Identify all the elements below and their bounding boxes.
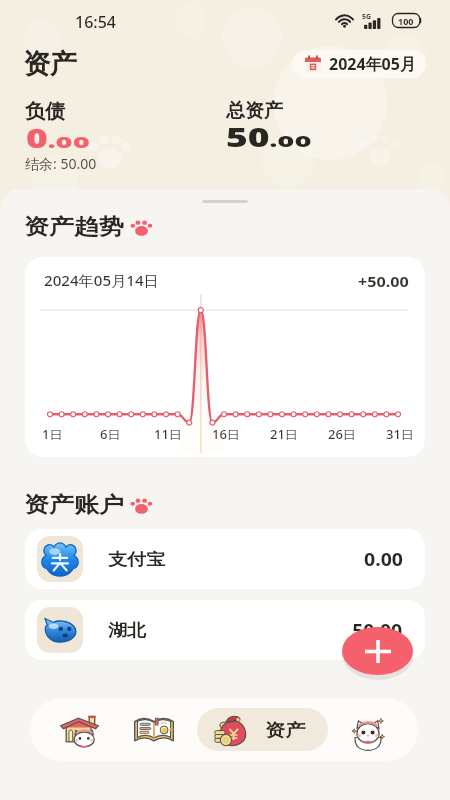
staticText: 2024年05月 xyxy=(329,53,416,75)
staticText: 11日 xyxy=(154,426,182,443)
staticText: .oo xyxy=(269,126,312,153)
staticText: 16:54 xyxy=(75,11,116,33)
button[interactable]: 资产 xyxy=(197,708,328,751)
button[interactable]: 我的 xyxy=(345,707,391,752)
staticText: 资产 xyxy=(265,719,305,741)
staticText: 50 xyxy=(226,118,269,154)
staticText: 100 xyxy=(398,15,414,27)
staticText: 结余: 50.00 xyxy=(25,154,97,173)
staticText: 2024年05月14日 xyxy=(44,271,159,290)
staticText: 负债 xyxy=(25,99,65,124)
staticText: 21日 xyxy=(270,426,298,443)
staticText: 总资产 xyxy=(226,99,283,123)
staticText: 50.00 xyxy=(352,619,403,642)
staticText: 资产账户 xyxy=(24,491,124,518)
staticText: 资产 xyxy=(23,47,77,81)
staticText: 湖北 xyxy=(108,620,146,641)
staticText: 资产趋势 xyxy=(24,213,124,240)
staticText: 支付宝 xyxy=(108,549,165,570)
staticText: 5G xyxy=(362,12,372,22)
staticText: 0.00 xyxy=(364,548,403,571)
button[interactable]: 添加 xyxy=(341,626,415,678)
button[interactable]: 首页 xyxy=(57,707,103,752)
staticText: 1日 xyxy=(42,426,63,443)
staticText: 16日 xyxy=(212,426,240,443)
staticText: 0 xyxy=(26,119,48,155)
staticText: .oo xyxy=(48,127,90,154)
button[interactable]: 支付宝 xyxy=(25,529,425,589)
staticText: +50.00 xyxy=(358,272,410,291)
staticText: 6日 xyxy=(100,426,121,443)
button[interactable]: 2024年05月 xyxy=(292,50,426,78)
button[interactable]: 湖北 xyxy=(25,600,425,660)
button[interactable]: 账本 xyxy=(131,707,177,752)
staticText: 31日 xyxy=(386,426,414,443)
staticText: 26日 xyxy=(328,426,356,443)
